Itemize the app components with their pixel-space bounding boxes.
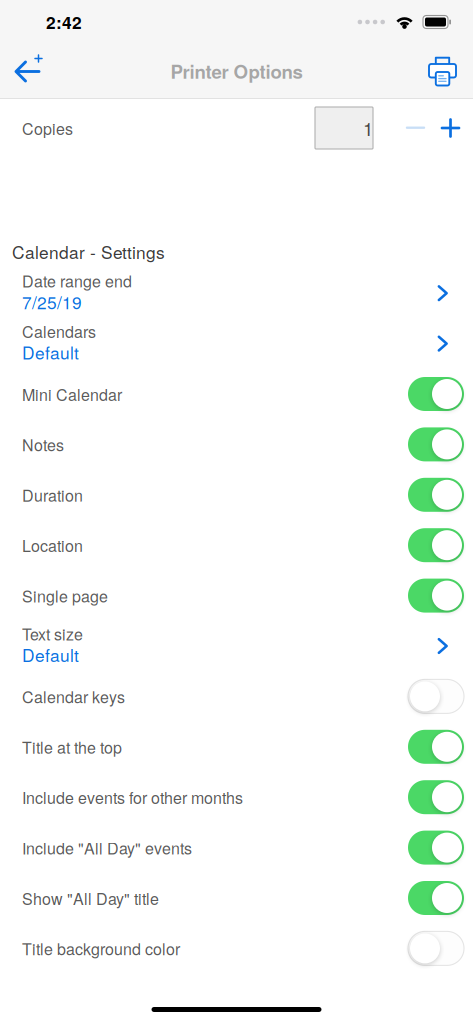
- staticText: Single page: [22, 584, 108, 607]
- staticText: Location: [22, 534, 83, 557]
- staticText: Default: [22, 340, 79, 364]
- button[interactable]: Show "All Day" title: [0, 873, 473, 923]
- staticText: Mini Calendar: [22, 382, 122, 405]
- staticText: Calendar keys: [22, 685, 125, 708]
- staticText: Duration: [22, 483, 83, 506]
- button[interactable]: Calendars: [0, 318, 473, 369]
- staticText: Text size: [22, 622, 83, 645]
- button[interactable]: Include "All Day" events: [0, 822, 473, 873]
- staticText: Default: [22, 642, 79, 667]
- staticText: 7/25/19: [22, 289, 82, 314]
- staticText: Date range end: [22, 269, 132, 292]
- button[interactable]: Title at the top: [0, 722, 473, 772]
- button[interactable]: Mini Calendar: [0, 369, 473, 419]
- staticText: Calendars: [22, 320, 96, 342]
- button[interactable]: Print: [417, 44, 473, 98]
- button[interactable]: Date range end: [0, 268, 473, 318]
- button[interactable]: Location: [0, 520, 473, 570]
- button[interactable]: Include events for other months: [0, 772, 473, 822]
- button[interactable]: Back: [0, 44, 54, 98]
- staticText: Printer Options: [170, 58, 302, 84]
- button[interactable]: Decrease copies: [398, 106, 433, 150]
- staticText: Include events for other months: [22, 786, 243, 809]
- staticText: 2:42: [46, 10, 82, 34]
- staticText: Notes: [22, 433, 64, 456]
- button[interactable]: Text size: [0, 621, 473, 671]
- button[interactable]: Calendar keys: [0, 671, 473, 722]
- staticText: Title at the top: [22, 735, 122, 758]
- staticText: Copies: [22, 116, 73, 139]
- staticText: Include "All Day" events: [22, 836, 192, 859]
- button[interactable]: Duration: [0, 470, 473, 520]
- staticText: Calendar - Settings: [12, 239, 165, 264]
- button[interactable]: Increase copies: [433, 106, 473, 150]
- staticText: 1: [363, 115, 373, 141]
- button[interactable]: Notes: [0, 419, 473, 470]
- button[interactable]: Title background color: [0, 923, 473, 974]
- staticText: Show "All Day" title: [22, 886, 159, 909]
- staticText: Title background color: [22, 937, 180, 960]
- button[interactable]: Single page: [0, 570, 473, 621]
